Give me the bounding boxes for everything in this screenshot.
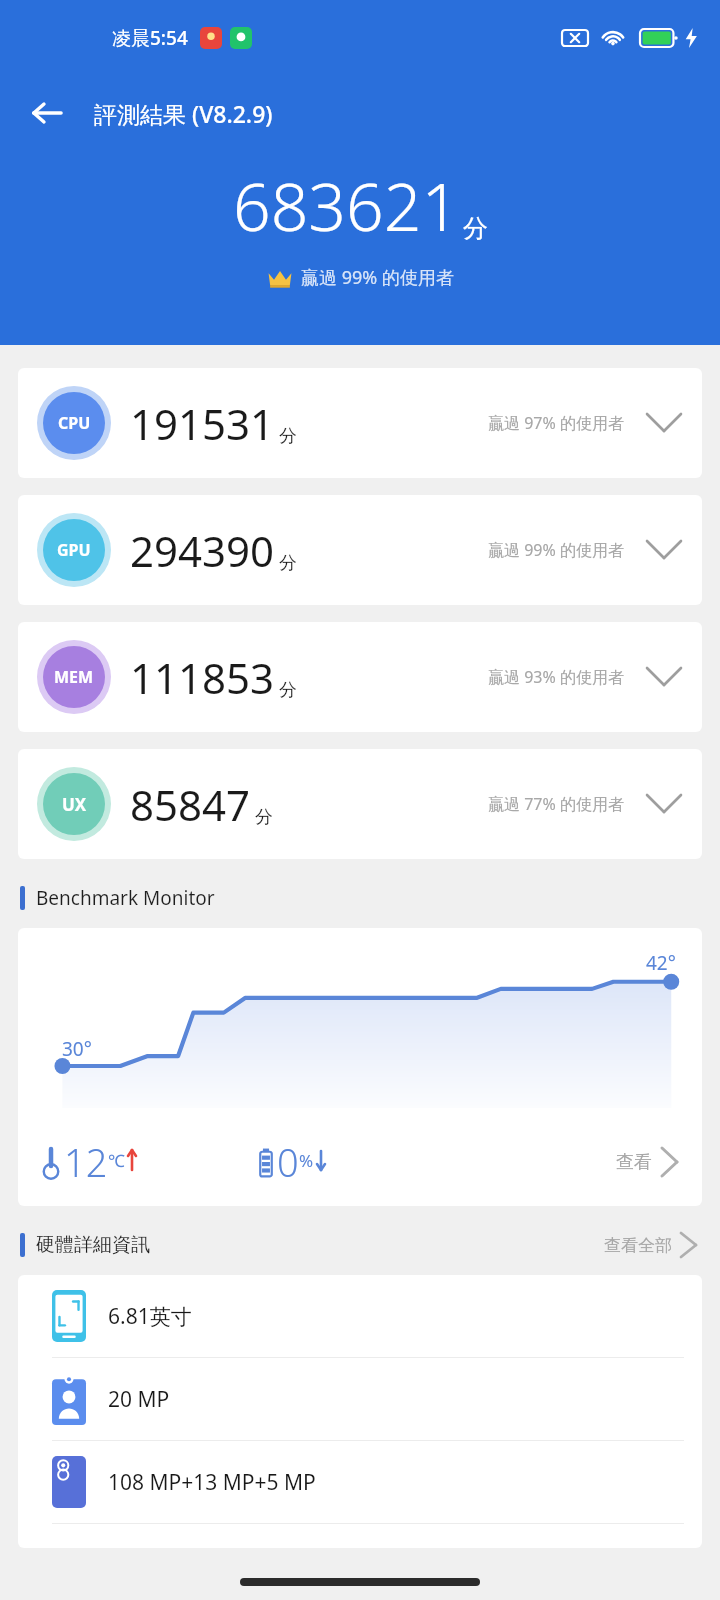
staticText: 12	[64, 1136, 108, 1188]
staticText: 贏過 77% 的使用者	[488, 793, 624, 815]
button[interactable]: UX	[18, 749, 702, 859]
staticText: 42°	[646, 950, 676, 976]
staticText: 贏過 99% 的使用者	[301, 265, 454, 290]
staticText: 191531	[130, 395, 275, 452]
staticText: 85847	[130, 776, 251, 833]
button[interactable]: Back	[22, 88, 72, 138]
staticText: ℃	[108, 1149, 125, 1172]
staticText: 贏過 99% 的使用者	[488, 539, 624, 561]
staticText: 0	[277, 1136, 299, 1188]
staticText: 贏過 93% 的使用者	[488, 666, 624, 688]
staticText: GPU	[57, 539, 91, 561]
button[interactable]: 硬體詳細資訊	[20, 1228, 700, 1262]
staticText: 凌晨5:54	[112, 25, 188, 51]
staticText: 30°	[62, 1036, 92, 1062]
staticText: 108 MP+13 MP+5 MP	[108, 1468, 316, 1497]
button[interactable]: 30°	[18, 928, 702, 1206]
staticText: 111853	[130, 649, 275, 706]
staticText: 20 MP	[108, 1385, 170, 1414]
staticText: 分	[255, 806, 273, 829]
staticText: 查看	[616, 1151, 652, 1174]
staticText: 6.81英寸	[108, 1302, 192, 1331]
button[interactable]: CPU	[18, 368, 702, 478]
staticText: MEM	[54, 666, 94, 688]
staticText: 683621	[233, 160, 460, 250]
staticText: CPU	[58, 412, 91, 434]
button[interactable]: GPU	[18, 495, 702, 605]
staticText: 分	[463, 213, 488, 244]
staticText: 分	[279, 552, 297, 575]
staticText: Benchmark Monitor	[36, 885, 215, 911]
staticText: 分	[279, 679, 297, 702]
staticText: 294390	[130, 522, 275, 579]
button[interactable]: 108 MP+13 MP+5 MP	[18, 1441, 702, 1524]
staticText: UX	[62, 793, 87, 816]
staticText: 贏過 97% 的使用者	[488, 412, 624, 434]
staticText: %	[299, 1149, 314, 1172]
staticText: 查看全部	[604, 1235, 672, 1256]
button[interactable]: 20 MP	[18, 1358, 702, 1441]
staticText: 評測結果 (V8.2.9)	[94, 98, 273, 129]
button[interactable]: 6.81英寸	[18, 1275, 702, 1358]
staticText: 硬體詳細資訊	[36, 1233, 150, 1257]
staticText: 分	[279, 425, 297, 448]
button[interactable]: MEM	[18, 622, 702, 732]
